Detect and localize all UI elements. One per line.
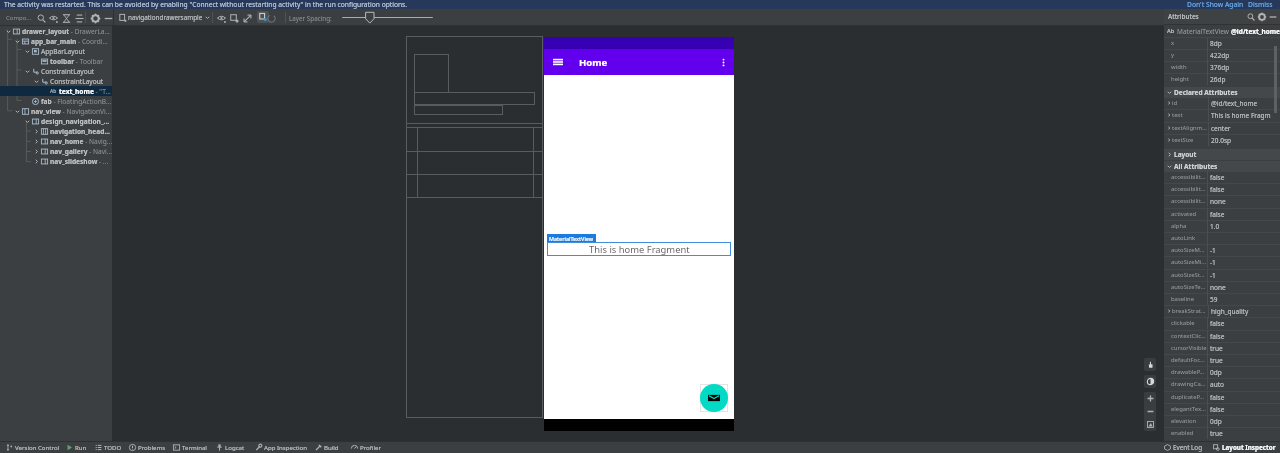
staticText: text <box>1172 111 1183 119</box>
button[interactable]: id <box>1164 97 1280 109</box>
staticText: Compo... <box>6 14 32 22</box>
button[interactable]: toolbar - Toolbar <box>0 56 112 66</box>
button[interactable]: Problems <box>129 441 166 453</box>
button[interactable]: height <box>1164 73 1280 85</box>
button[interactable]: navigationdrawersample <box>119 9 210 26</box>
button[interactable]: x <box>1164 37 1280 49</box>
button[interactable]: App Inspection <box>255 441 308 453</box>
staticText: high_quality <box>1211 307 1249 316</box>
button[interactable]: nav_slideshow - ... <box>0 156 112 166</box>
button[interactable]: nav_gallery - Navi... <box>0 146 112 156</box>
button[interactable]: baseline <box>1164 293 1280 305</box>
staticText: Layer Spacing: <box>289 14 332 23</box>
staticText: Attributes <box>1168 12 1199 21</box>
button[interactable]: Reload <box>227 11 241 25</box>
button[interactable]: TODO <box>95 441 122 453</box>
button[interactable]: Show all <box>46 11 60 25</box>
button[interactable]: Zoom out <box>1144 405 1156 418</box>
button[interactable]: autoSizeM... <box>1164 244 1280 256</box>
staticText: The activity was restarted. This can be … <box>4 0 408 9</box>
staticText: drawer_layout - DrawerLa... <box>22 27 110 36</box>
staticText: navigation_head... <box>50 127 110 136</box>
button[interactable]: Logcat <box>216 441 245 453</box>
staticText: 8dp <box>1210 39 1222 48</box>
button[interactable]: drawingCa... <box>1164 378 1280 390</box>
button[interactable]: Open navigation drawer <box>551 55 565 69</box>
button[interactable]: Build <box>315 441 339 453</box>
staticText: elegantTex... <box>1171 405 1206 413</box>
button[interactable]: accessibilit... <box>1164 183 1280 195</box>
button[interactable]: contextClic... <box>1164 330 1280 342</box>
button[interactable]: More options <box>716 55 730 69</box>
button[interactable]: Search <box>34 11 48 25</box>
button[interactable]: Event Log <box>1164 441 1203 453</box>
button[interactable]: Version Control <box>6 441 60 453</box>
button[interactable]: Profiler <box>351 441 381 453</box>
staticText: autoLink <box>1171 234 1196 242</box>
button[interactable]: Live updates <box>257 11 269 23</box>
button[interactable]: width <box>1164 61 1280 73</box>
button[interactable]: Toggle overlay <box>214 11 228 25</box>
button[interactable]: Zoom in <box>1144 392 1156 405</box>
button[interactable]: accessibilit... <box>1164 195 1280 207</box>
button[interactable]: cursorVisible <box>1164 342 1280 354</box>
button[interactable]: Collapse all <box>72 11 86 25</box>
button[interactable]: Attribute settings <box>1256 11 1267 22</box>
button[interactable]: Dismiss <box>1248 0 1273 9</box>
staticText: center <box>1211 124 1231 133</box>
button[interactable]: app_bar_main - Coordi... <box>0 36 112 46</box>
button[interactable]: activated <box>1164 208 1280 220</box>
button[interactable]: Ab <box>0 86 112 96</box>
button[interactable]: Layout Inspector <box>1213 441 1276 453</box>
button[interactable]: elegantTex... <box>1164 403 1280 415</box>
button[interactable]: defaultFoc... <box>1164 354 1280 366</box>
button[interactable]: Expand all <box>59 11 73 25</box>
button[interactable]: Layer mode <box>1144 375 1156 388</box>
button[interactable]: Minimize <box>101 11 115 25</box>
button[interactable]: design_navigation_... <box>0 116 112 126</box>
button[interactable]: Refresh <box>264 11 278 25</box>
button[interactable]: Don't Show Again <box>1187 0 1244 9</box>
button[interactable]: Zoom to fit <box>1144 418 1156 431</box>
button[interactable]: alpha <box>1164 220 1280 232</box>
button[interactable]: AppBarLayout <box>0 46 112 56</box>
staticText: none <box>1210 197 1226 206</box>
button[interactable]: duplicateP... <box>1164 391 1280 403</box>
button[interactable]: nav_view - NavigationVi... <box>0 106 112 116</box>
button[interactable]: drawer_layout - DrawerLa... <box>0 26 112 36</box>
button[interactable]: Settings <box>88 11 102 25</box>
button[interactable]: nav_home - Navig... <box>0 136 112 146</box>
button[interactable]: Declared Attributes <box>1164 87 1280 98</box>
button[interactable]: clickable <box>1164 317 1280 329</box>
button[interactable]: textSize <box>1164 134 1280 146</box>
button[interactable]: All Attributes <box>1164 161 1280 172</box>
button[interactable]: Layer spacing slider <box>341 12 434 24</box>
button[interactable]: autoSizeSt... <box>1164 269 1280 281</box>
button[interactable]: text <box>1164 109 1280 121</box>
button[interactable]: autoSizeMi... <box>1164 256 1280 268</box>
button[interactable]: 3D mode <box>240 11 254 25</box>
button[interactable]: textAlignm... <box>1164 122 1280 134</box>
button[interactable]: Search attributes <box>1245 11 1256 22</box>
button[interactable]: fab - FloatingActionB... <box>0 96 112 106</box>
button[interactable]: ConstraintLayout <box>0 66 112 76</box>
button[interactable]: autoLink <box>1164 232 1280 244</box>
button[interactable]: Pan mode <box>1144 358 1156 371</box>
button[interactable]: Layout <box>1164 149 1280 160</box>
button[interactable]: y <box>1164 49 1280 61</box>
button[interactable]: accessibilit... <box>1164 171 1280 183</box>
button[interactable]: enabled <box>1164 427 1280 439</box>
button[interactable]: autoSizeTe... <box>1164 281 1280 293</box>
button[interactable]: navigation_head... <box>0 126 112 136</box>
button[interactable]: drawableP... <box>1164 366 1280 378</box>
button[interactable]: Send email <box>700 384 728 412</box>
button[interactable]: ConstraintLayout <box>0 76 112 86</box>
staticText: false <box>1210 173 1225 182</box>
button[interactable]: breakStrat... <box>1164 305 1280 317</box>
staticText: textSize <box>1172 136 1194 144</box>
staticText: AppBarLayout <box>41 47 85 56</box>
button[interactable]: Run <box>66 441 87 453</box>
button[interactable]: Terminal <box>173 441 207 453</box>
button[interactable]: elevation <box>1164 415 1280 427</box>
button[interactable]: Hide attributes <box>1267 11 1278 22</box>
